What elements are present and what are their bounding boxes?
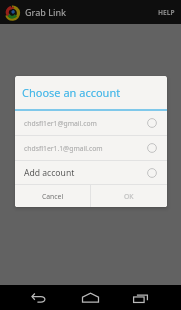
staticText: Choose an account — [22, 85, 121, 100]
button[interactable]: chdsfl1er1@gmail.com — [15, 111, 167, 135]
staticText: Add account — [24, 167, 147, 179]
button[interactable]: OK — [91, 185, 167, 207]
button[interactable]: Recents — [126, 285, 154, 310]
staticText: OK — [124, 192, 134, 201]
staticText: Cancel — [42, 192, 64, 201]
button[interactable]: Home — [76, 285, 104, 310]
button[interactable]: HELP — [152, 3, 181, 22]
button[interactable]: chdsfl1er1.1@gmail.com — [15, 136, 167, 160]
staticText: HELP — [158, 8, 175, 17]
button[interactable]: Cancel — [15, 185, 90, 207]
button[interactable]: Back — [25, 285, 53, 310]
staticText: chdsfl1er1@gmail.com — [24, 119, 147, 128]
staticText: chdsfl1er1.1@gmail.com — [24, 144, 147, 153]
staticText: Grab Link — [25, 6, 67, 18]
button[interactable]: Add account — [15, 161, 167, 184]
